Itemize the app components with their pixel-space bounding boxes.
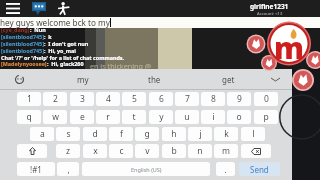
button[interactable]: o bbox=[227, 110, 251, 124]
staticText: [silentblood745] bbox=[1, 33, 44, 40]
button[interactable]: Send bbox=[239, 162, 280, 176]
button[interactable]: k bbox=[214, 127, 238, 141]
staticText: f bbox=[120, 128, 123, 140]
staticText: [Madelynyoosee] bbox=[1, 60, 47, 67]
button[interactable]: g bbox=[135, 127, 159, 141]
staticText: . bbox=[224, 164, 227, 175]
staticText: l bbox=[252, 128, 255, 140]
staticText: English (US) bbox=[131, 166, 162, 173]
button[interactable]: Backspace bbox=[241, 144, 271, 158]
staticText: Chat '/?' or '/help' for a list of chat … bbox=[1, 54, 125, 61]
staticText: w bbox=[52, 111, 59, 123]
staticText: a bbox=[40, 128, 45, 140]
staticText: p bbox=[263, 111, 269, 123]
button[interactable]: d bbox=[83, 127, 107, 141]
button[interactable]: w bbox=[43, 110, 67, 124]
staticText: : I don't got nun bbox=[44, 40, 89, 47]
button[interactable]: c bbox=[109, 144, 133, 158]
staticText: : Nun bbox=[30, 26, 46, 33]
button[interactable]: y bbox=[149, 110, 173, 124]
button[interactable]: t bbox=[122, 110, 146, 124]
button[interactable]: 7 bbox=[175, 92, 199, 106]
staticText: 6 bbox=[159, 93, 164, 105]
button[interactable]: p bbox=[254, 110, 278, 124]
staticText: 4 bbox=[106, 93, 111, 105]
button[interactable]: f bbox=[109, 127, 133, 141]
staticText: n bbox=[197, 145, 203, 157]
button[interactable]: j bbox=[188, 127, 212, 141]
button[interactable]: the bbox=[132, 69, 176, 89]
button[interactable]: Expand suggestions bbox=[271, 77, 280, 82]
staticText: [cye_dang] bbox=[1, 26, 30, 33]
staticText: : k bbox=[44, 33, 52, 40]
staticText: [silentblood745] bbox=[1, 40, 44, 47]
button[interactable]: h bbox=[162, 127, 186, 141]
staticText: my bbox=[77, 74, 89, 85]
staticText: 7 bbox=[185, 93, 190, 105]
staticText: : Hi, g!ack260 bbox=[47, 60, 84, 67]
button[interactable]: r bbox=[96, 110, 120, 124]
staticText: c bbox=[119, 145, 124, 157]
staticText: : Hi, yo_mai bbox=[44, 47, 76, 54]
staticText: 5 bbox=[132, 93, 137, 105]
button[interactable]: q bbox=[17, 110, 41, 124]
button[interactable]: b bbox=[162, 144, 186, 158]
staticText: j bbox=[199, 128, 202, 140]
staticText: x bbox=[93, 145, 98, 157]
button[interactable]: u bbox=[175, 110, 199, 124]
staticText: 0 bbox=[264, 93, 269, 105]
button[interactable]: get bbox=[206, 69, 250, 89]
button[interactable]: . bbox=[216, 162, 235, 176]
staticText: i bbox=[212, 111, 215, 123]
button[interactable]: Menu bbox=[6, 3, 20, 14]
staticText: o bbox=[236, 111, 242, 123]
button[interactable]: , bbox=[57, 162, 79, 176]
button[interactable]: 0 bbox=[254, 92, 278, 106]
button[interactable]: English (US) bbox=[82, 162, 210, 176]
button[interactable]: 8 bbox=[201, 92, 225, 106]
staticText: m bbox=[274, 27, 304, 68]
button[interactable]: hey guys welcome bck to my bbox=[0, 17, 320, 28]
staticText: h bbox=[171, 128, 177, 140]
button[interactable]: 6 bbox=[149, 92, 173, 106]
staticText: d bbox=[92, 128, 98, 140]
button[interactable]: n bbox=[188, 144, 212, 158]
button[interactable]: 4 bbox=[96, 92, 120, 106]
staticText: girlfine1231 bbox=[250, 2, 289, 11]
staticText: y bbox=[159, 111, 164, 123]
button[interactable]: 9 bbox=[227, 92, 251, 106]
button[interactable]: 3 bbox=[70, 92, 94, 106]
staticText: 8 bbox=[211, 93, 216, 105]
button[interactable]: a bbox=[30, 127, 54, 141]
button[interactable]: 1 bbox=[17, 92, 41, 106]
button[interactable]: e bbox=[70, 110, 94, 124]
staticText: b bbox=[171, 145, 177, 157]
button[interactable]: x bbox=[83, 144, 107, 158]
staticText: the bbox=[148, 74, 161, 85]
button[interactable]: Chat bbox=[32, 2, 46, 15]
staticText: z bbox=[66, 145, 70, 157]
staticText: !#1 bbox=[30, 164, 42, 175]
button[interactable]: v bbox=[135, 144, 159, 158]
button[interactable]: my bbox=[61, 69, 105, 89]
button[interactable]: s bbox=[56, 127, 80, 141]
staticText: m bbox=[222, 145, 230, 157]
button[interactable]: 5 bbox=[122, 92, 146, 106]
staticText: get bbox=[222, 74, 235, 85]
staticText: 1 bbox=[27, 93, 32, 105]
button[interactable]: l bbox=[241, 127, 265, 141]
button[interactable]: Clipboard history bbox=[14, 74, 25, 85]
button[interactable]: z bbox=[56, 144, 80, 158]
button[interactable]: !#1 bbox=[17, 162, 55, 176]
staticText: t bbox=[132, 111, 136, 123]
button[interactable]: 2 bbox=[43, 92, 67, 106]
staticText: g bbox=[144, 128, 150, 140]
button[interactable]: Accessibility bbox=[57, 2, 70, 15]
staticText: k bbox=[224, 128, 229, 140]
button[interactable]: Shift bbox=[17, 144, 47, 158]
staticText: en is thickening @ bbox=[90, 61, 152, 71]
staticText: Send bbox=[250, 164, 269, 175]
button[interactable]: m bbox=[214, 144, 238, 158]
staticText: u bbox=[184, 111, 190, 123]
button[interactable]: i bbox=[201, 110, 225, 124]
